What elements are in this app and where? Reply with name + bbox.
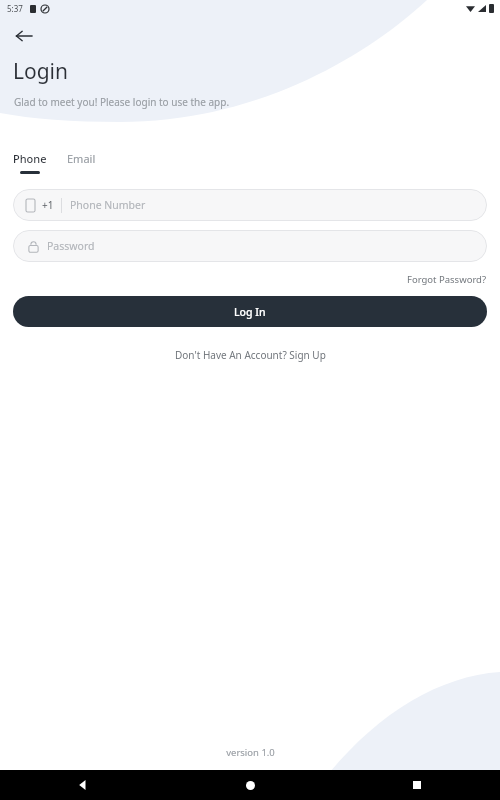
button[interactable]: Don't Have An Account? Sign Up bbox=[172, 345, 329, 365]
staticText: Password bbox=[47, 239, 95, 253]
staticText: +1 bbox=[42, 198, 54, 212]
staticText: 5:37 bbox=[7, 3, 23, 14]
button[interactable]: Back bbox=[68, 770, 98, 800]
button[interactable]: +1 bbox=[13, 189, 487, 221]
staticText: Email bbox=[67, 151, 96, 166]
staticText: Forgot Password? bbox=[407, 273, 487, 286]
button[interactable]: Password bbox=[13, 230, 487, 262]
staticText: Phone bbox=[13, 151, 47, 166]
staticText: Log In bbox=[234, 305, 266, 319]
button[interactable]: Forgot Password? bbox=[405, 271, 489, 288]
button[interactable]: Back bbox=[6, 18, 42, 54]
button[interactable]: Phone bbox=[10, 150, 50, 167]
staticText: Glad to meet you! Please login to use th… bbox=[14, 95, 230, 109]
staticText: version 1.0 bbox=[226, 746, 275, 759]
staticText: Login bbox=[13, 57, 69, 86]
button[interactable]: Log In bbox=[13, 296, 487, 327]
staticText: Don't Have An Account? Sign Up bbox=[175, 348, 326, 362]
button[interactable]: Email bbox=[64, 150, 99, 167]
staticText: Phone Number bbox=[70, 198, 146, 212]
button[interactable]: Recent apps bbox=[402, 770, 432, 800]
button[interactable]: Home bbox=[235, 770, 265, 800]
